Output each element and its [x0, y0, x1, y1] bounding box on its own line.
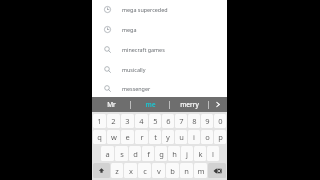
staticText: x: [129, 166, 133, 176]
button[interactable]: 4: [135, 114, 148, 128]
button[interactable]: d: [129, 146, 141, 161]
button[interactable]: e: [121, 130, 134, 144]
button[interactable]: w: [107, 130, 120, 144]
button[interactable]: x: [124, 163, 137, 178]
button[interactable]: More suggestions: [209, 97, 227, 112]
staticText: o: [205, 132, 210, 142]
staticText: b: [170, 166, 175, 176]
button[interactable]: c: [138, 163, 151, 178]
button[interactable]: Shift: [93, 163, 110, 178]
button[interactable]: merry: [170, 97, 208, 112]
button[interactable]: a: [101, 146, 114, 161]
staticText: 8: [192, 116, 197, 126]
button[interactable]: g: [155, 146, 167, 161]
staticText: 2: [111, 116, 116, 126]
button[interactable]: m: [194, 163, 207, 178]
staticText: p: [218, 132, 223, 142]
staticText: Mr: [107, 100, 116, 109]
button[interactable]: 1: [93, 114, 106, 128]
button[interactable]: k: [194, 146, 206, 161]
button[interactable]: b: [166, 163, 179, 178]
button[interactable]: s: [115, 146, 128, 161]
staticText: c: [143, 166, 147, 176]
button[interactable]: mega superceded: [92, 0, 227, 19]
staticText: n: [184, 166, 189, 176]
staticText: 9: [205, 116, 210, 126]
staticText: m: [197, 166, 205, 176]
button[interactable]: messenger: [92, 79, 227, 97]
staticText: h: [172, 149, 177, 159]
staticText: 4: [139, 116, 144, 126]
button[interactable]: o: [201, 130, 213, 144]
staticText: z: [115, 166, 119, 176]
button[interactable]: t: [149, 130, 161, 144]
staticText: d: [133, 149, 138, 159]
staticText: 7: [179, 116, 184, 126]
staticText: y: [166, 132, 170, 142]
staticText: mega: [122, 26, 137, 33]
staticText: 3: [125, 116, 130, 126]
staticText: j: [186, 149, 188, 159]
button[interactable]: Backspace: [208, 163, 226, 178]
staticText: w: [111, 132, 117, 142]
button[interactable]: p: [214, 130, 226, 144]
button[interactable]: 9: [201, 114, 213, 128]
staticText: mega superceded: [122, 6, 168, 13]
button[interactable]: 5: [149, 114, 161, 128]
staticText: messenger: [122, 85, 151, 92]
staticText: u: [179, 132, 184, 142]
staticText: l: [212, 149, 214, 159]
button[interactable]: l: [207, 146, 219, 161]
button[interactable]: minecraft games: [92, 39, 227, 59]
button[interactable]: Mr: [92, 97, 130, 112]
button[interactable]: q: [93, 130, 106, 144]
button[interactable]: f: [142, 146, 154, 161]
staticText: 0: [218, 116, 223, 126]
button[interactable]: n: [180, 163, 193, 178]
staticText: t: [154, 132, 157, 142]
staticText: s: [120, 149, 124, 159]
button[interactable]: j: [181, 146, 193, 161]
button[interactable]: r: [135, 130, 148, 144]
button[interactable]: mega: [92, 19, 227, 39]
staticText: me: [145, 100, 156, 109]
button[interactable]: 0: [214, 114, 226, 128]
button[interactable]: 6: [162, 114, 174, 128]
button[interactable]: me: [131, 97, 169, 112]
staticText: musically: [122, 66, 146, 73]
staticText: g: [159, 149, 164, 159]
staticText: merry: [180, 100, 199, 109]
staticText: a: [105, 149, 110, 159]
button[interactable]: musically: [92, 59, 227, 79]
staticText: q: [97, 132, 102, 142]
button[interactable]: h: [168, 146, 180, 161]
button[interactable]: 7: [175, 114, 187, 128]
staticText: r: [140, 132, 144, 142]
staticText: k: [198, 149, 203, 159]
button[interactable]: v: [152, 163, 165, 178]
staticText: f: [147, 149, 150, 159]
staticText: 1: [97, 116, 102, 126]
staticText: minecraft games: [122, 46, 165, 53]
button[interactable]: 3: [121, 114, 134, 128]
staticText: 6: [166, 116, 171, 126]
button[interactable]: 8: [188, 114, 200, 128]
button[interactable]: 2: [107, 114, 120, 128]
button[interactable]: y: [162, 130, 174, 144]
button[interactable]: u: [175, 130, 187, 144]
staticText: 5: [153, 116, 158, 126]
button[interactable]: i: [188, 130, 200, 144]
staticText: v: [157, 166, 161, 176]
button[interactable]: z: [111, 163, 123, 178]
staticText: i: [193, 132, 195, 142]
staticText: e: [125, 132, 130, 142]
